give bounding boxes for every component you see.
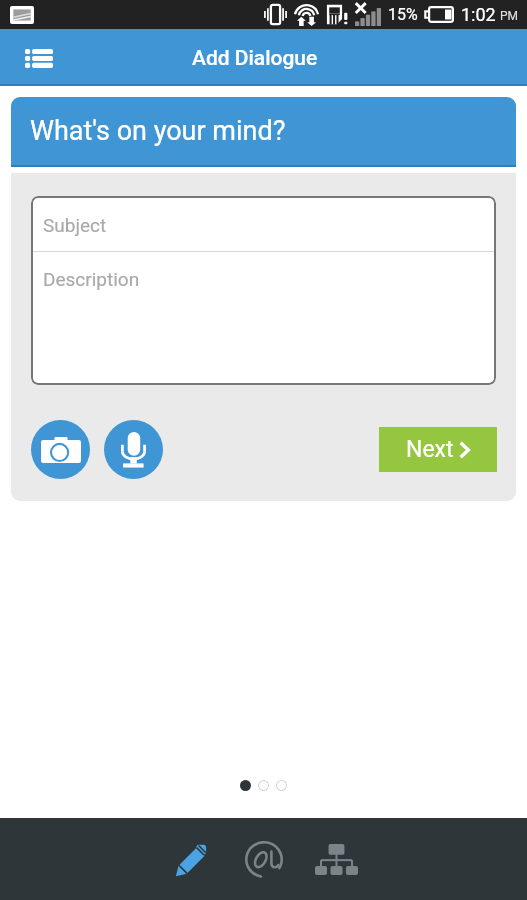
staticText: Next bbox=[406, 436, 454, 463]
staticText: Subject bbox=[43, 214, 107, 236]
button[interactable]: Hierarchy bbox=[300, 823, 373, 896]
button[interactable]: Next bbox=[379, 427, 497, 472]
button[interactable]: Menu bbox=[15, 34, 63, 82]
button[interactable]: Record audio bbox=[104, 420, 163, 479]
button[interactable]: Compose dialogue bbox=[154, 823, 227, 896]
button[interactable]: Page 3 bbox=[276, 780, 287, 791]
button[interactable]: Page 2 bbox=[258, 780, 269, 791]
staticText: 15% bbox=[388, 5, 418, 24]
button[interactable]: Page 1 bbox=[240, 780, 251, 791]
staticText: What's on your mind? bbox=[30, 115, 286, 147]
staticText: PM bbox=[500, 9, 519, 23]
staticText: 1:02 bbox=[461, 4, 496, 25]
staticText: Add Dialogue bbox=[192, 46, 318, 71]
staticText: Description bbox=[43, 268, 140, 290]
button[interactable]: Take photo bbox=[31, 420, 90, 479]
button[interactable]: Mentions bbox=[227, 823, 300, 896]
